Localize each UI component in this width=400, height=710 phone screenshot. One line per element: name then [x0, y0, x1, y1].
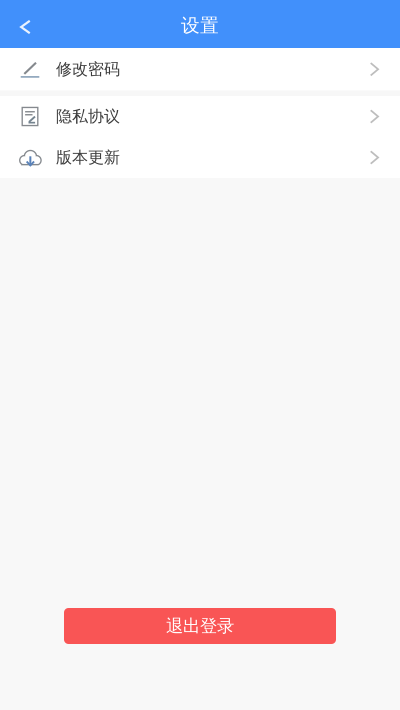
- staticText: 设置: [181, 14, 219, 37]
- button[interactable]: 修改密码: [0, 48, 400, 90]
- staticText: 修改密码: [56, 59, 120, 79]
- button[interactable]: 隐私协议: [0, 96, 400, 137]
- staticText: 版本更新: [56, 148, 120, 167]
- staticText: 退出登录: [166, 615, 234, 637]
- button[interactable]: Back: [3, 3, 47, 51]
- staticText: 隐私协议: [56, 107, 120, 126]
- button[interactable]: 版本更新: [0, 137, 400, 178]
- button[interactable]: 退出登录: [64, 608, 336, 644]
